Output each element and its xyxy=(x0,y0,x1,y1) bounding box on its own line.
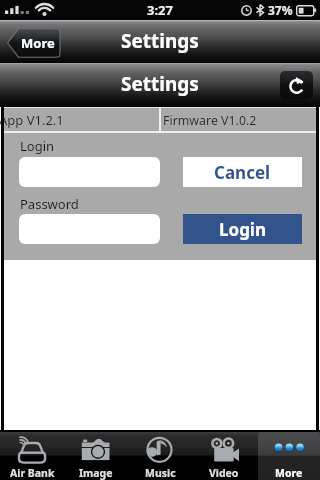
staticText: Firmware V1.0.2 xyxy=(163,112,257,129)
staticText: Login xyxy=(219,218,267,241)
button[interactable]: Cancel xyxy=(183,157,302,187)
button[interactable]: Image xyxy=(64,430,128,480)
staticText: Music xyxy=(145,466,176,480)
button[interactable]: More xyxy=(258,430,320,480)
staticText: 37% xyxy=(268,2,293,18)
button[interactable] xyxy=(19,157,160,187)
staticText: Login xyxy=(20,137,55,155)
button[interactable] xyxy=(19,214,160,244)
button[interactable]: Air Bank xyxy=(0,430,64,480)
staticText: More xyxy=(275,466,303,480)
staticText: Settings xyxy=(121,71,199,97)
staticText: Image xyxy=(79,466,113,480)
staticText: Video xyxy=(209,466,239,480)
staticText: Air Bank xyxy=(10,466,55,480)
button[interactable]: Music xyxy=(128,430,192,480)
staticText: Settings xyxy=(121,28,199,54)
button[interactable]: Video xyxy=(192,430,256,480)
button[interactable]: More xyxy=(7,28,60,58)
staticText: Cancel xyxy=(214,161,271,184)
staticText: Password xyxy=(20,195,79,213)
staticText: 3:27 xyxy=(147,1,173,19)
button[interactable]: Refresh xyxy=(280,71,313,99)
button[interactable]: Login xyxy=(183,214,302,244)
staticText: More xyxy=(21,34,55,52)
staticText: App V1.2.1 xyxy=(0,111,64,129)
